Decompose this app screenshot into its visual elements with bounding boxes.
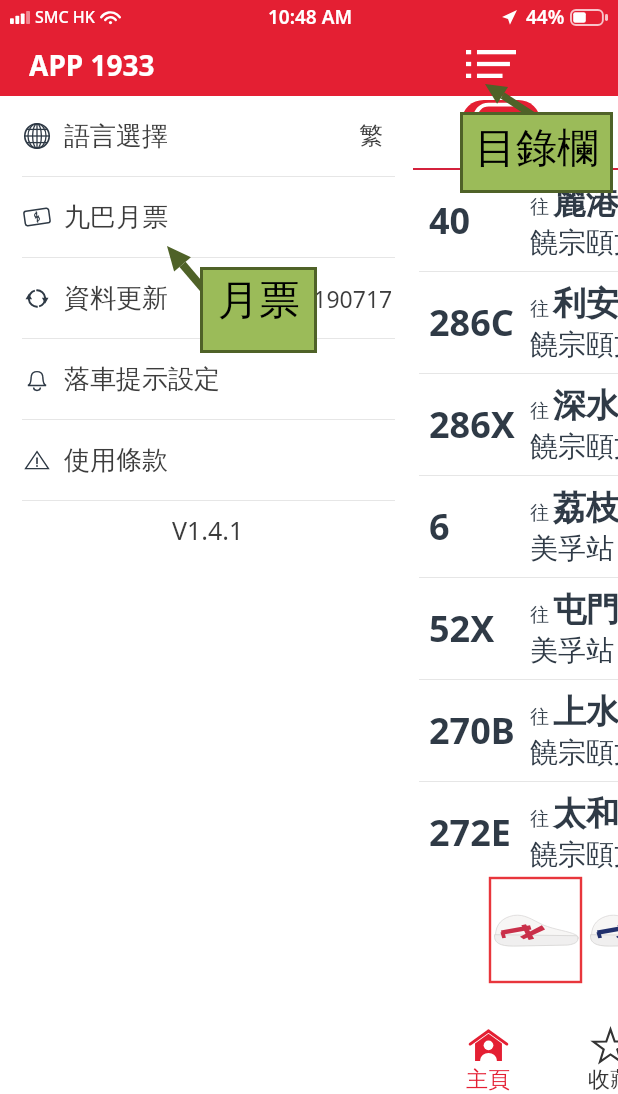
staticText: 主頁 bbox=[466, 1066, 510, 1094]
button[interactable]: 286X bbox=[413, 374, 618, 475]
button[interactable]: 九巴月票 bbox=[0, 177, 413, 257]
button[interactable]: 落車提示設定 bbox=[0, 339, 413, 419]
staticText: 往 bbox=[530, 399, 549, 423]
staticText: 月票 bbox=[218, 275, 300, 327]
staticText: 饒宗頤文化館 bbox=[530, 429, 618, 464]
staticText: 往 bbox=[530, 501, 549, 525]
staticText: 往 bbox=[530, 297, 549, 321]
button[interactable]: 語言選擇 bbox=[0, 96, 413, 176]
staticText: 6 bbox=[429, 502, 450, 551]
staticText: 286X bbox=[429, 400, 515, 449]
staticText: 九巴月票 bbox=[64, 201, 168, 234]
button[interactable]: 270B bbox=[413, 680, 618, 781]
staticText: 荔枝角 bbox=[553, 487, 618, 529]
staticText: 40 bbox=[429, 196, 471, 245]
staticText: 上水 bbox=[553, 691, 618, 733]
staticText: 286C bbox=[429, 298, 514, 347]
staticText: 美孚站 bbox=[530, 531, 614, 566]
staticText: 10:48 AM bbox=[268, 4, 353, 30]
staticText: 目錄欄 bbox=[475, 123, 598, 175]
staticText: 資料更新 bbox=[64, 282, 168, 315]
button[interactable]: 收藏 bbox=[549, 1001, 618, 1094]
button[interactable]: 52X bbox=[413, 578, 618, 679]
staticText: 270B bbox=[429, 706, 515, 755]
staticText: 272E bbox=[429, 808, 511, 857]
staticText: 語言選擇 bbox=[64, 120, 168, 153]
staticText: 深水埗 bbox=[553, 385, 618, 427]
staticText: 饒宗頤文化館 bbox=[530, 837, 618, 872]
staticText: 美孚站 bbox=[530, 633, 614, 668]
button[interactable]: Menu bbox=[452, 34, 530, 96]
staticText: 44% bbox=[526, 4, 565, 30]
staticText: 麗港城 bbox=[553, 181, 618, 223]
button[interactable]: 286C bbox=[413, 272, 618, 373]
staticText: APP 1933 bbox=[29, 46, 155, 84]
staticText: 繁 bbox=[359, 121, 383, 151]
staticText: 往 bbox=[530, 195, 549, 219]
button[interactable]: 6 bbox=[413, 476, 618, 577]
button[interactable]: 272E bbox=[413, 782, 618, 883]
button[interactable] bbox=[490, 878, 581, 982]
button[interactable]: 使用條款 bbox=[0, 420, 413, 500]
staticText: V1.4.1 bbox=[172, 513, 244, 547]
staticText: 往 bbox=[530, 603, 549, 627]
button[interactable]: 資料更新 bbox=[0, 258, 413, 338]
button[interactable] bbox=[586, 878, 618, 982]
staticText: 饒宗頤文化館 bbox=[530, 735, 618, 770]
staticText: 52X bbox=[429, 604, 495, 653]
staticText: 往 bbox=[530, 705, 549, 729]
staticText: 20190717 bbox=[287, 283, 393, 314]
staticText: 落車提示設定 bbox=[64, 363, 220, 396]
staticText: 往 bbox=[530, 807, 549, 831]
button[interactable]: 40 bbox=[413, 170, 618, 271]
staticText: 太和 bbox=[553, 793, 618, 835]
staticText: 收藏 bbox=[588, 1066, 618, 1094]
staticText: 使用條款 bbox=[64, 444, 168, 477]
button[interactable]: 主頁 bbox=[427, 1001, 549, 1094]
staticText: 屯門市中心 bbox=[553, 589, 618, 631]
staticText: SMC HK bbox=[35, 6, 95, 28]
staticText: 利安 bbox=[553, 283, 618, 325]
staticText: 饒宗頤文化館 bbox=[530, 225, 618, 260]
staticText: 饒宗頤文化館 bbox=[530, 327, 618, 362]
